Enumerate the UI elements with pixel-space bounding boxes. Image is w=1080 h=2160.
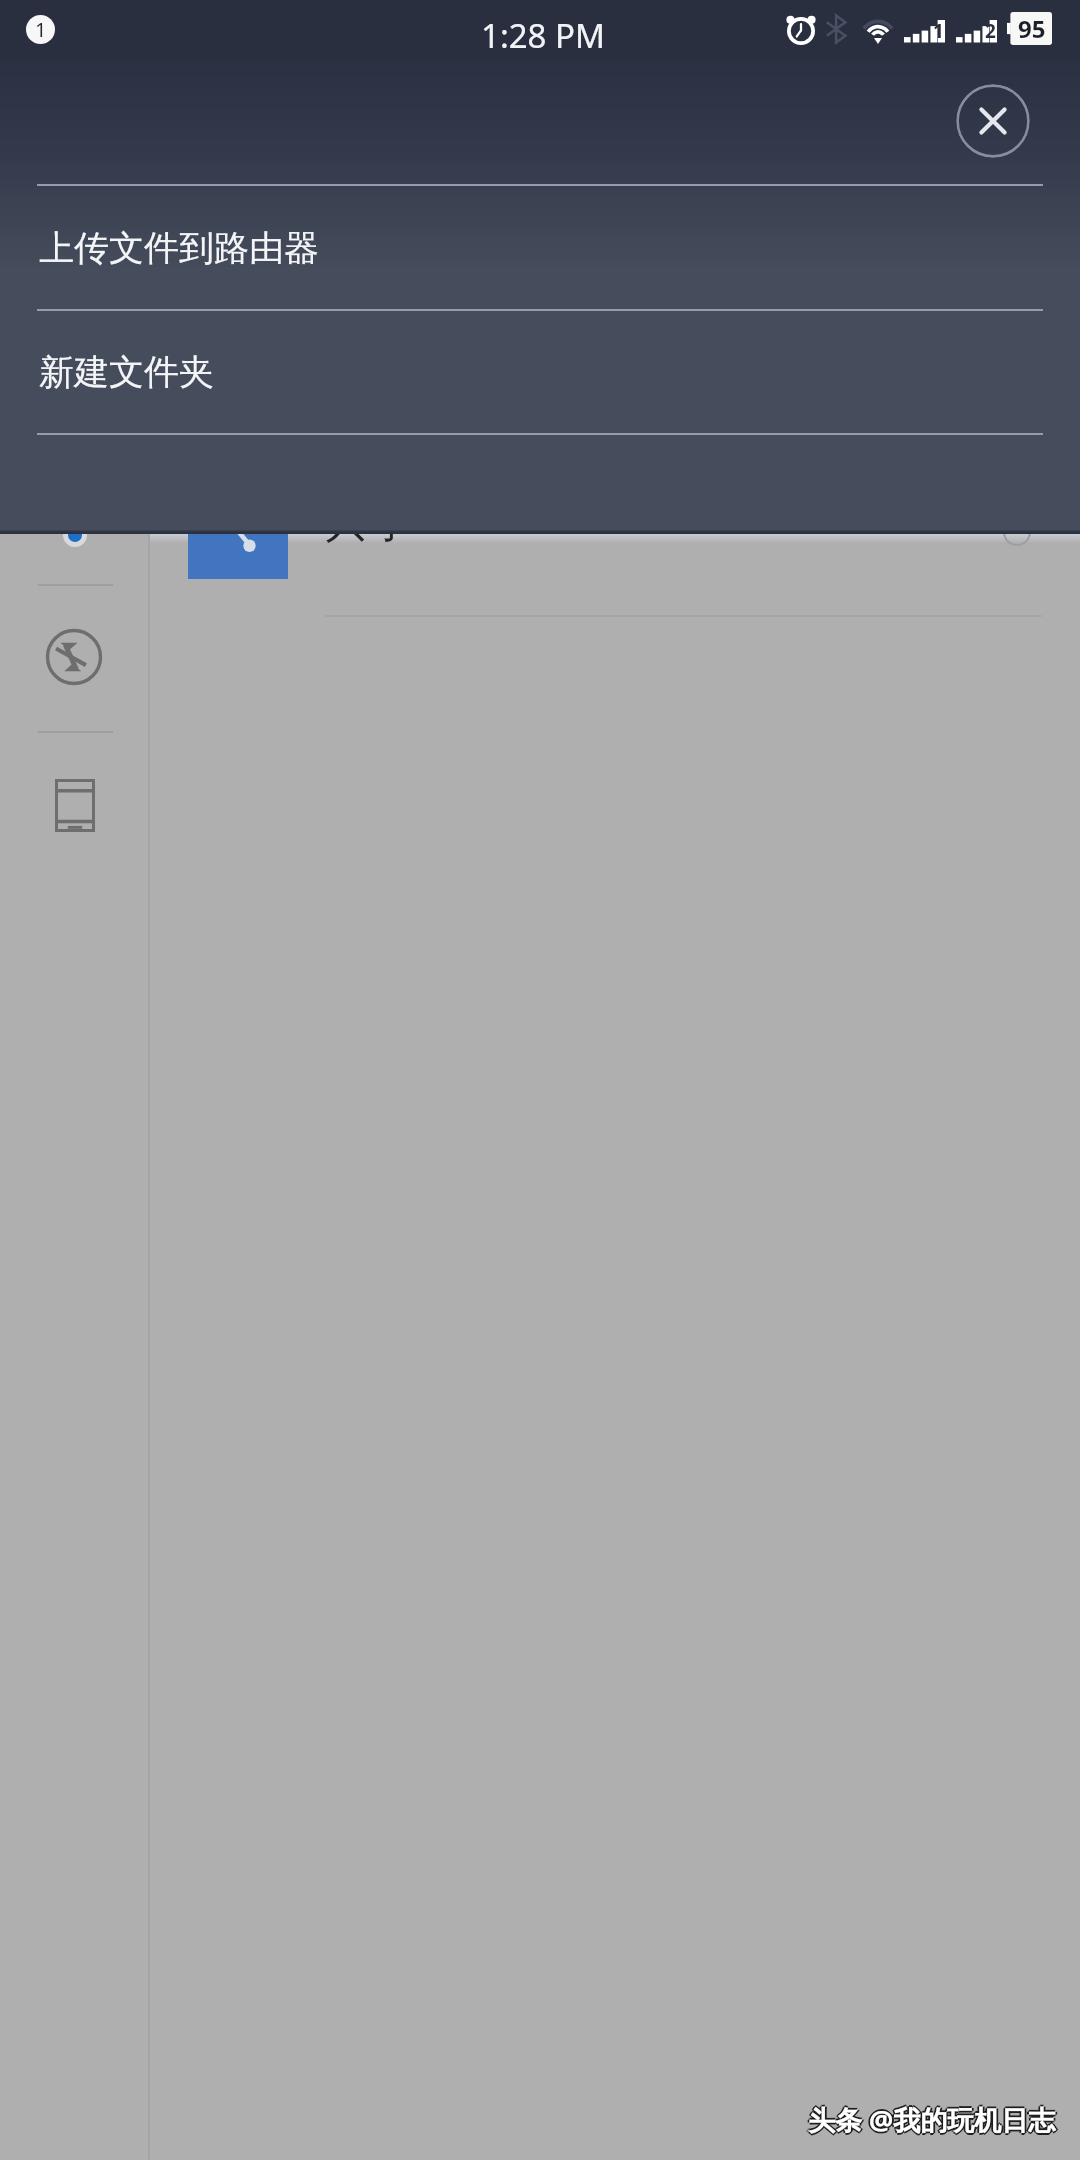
staticText: 头条 @我的玩机日志: [808, 2099, 1056, 2136]
staticText: 1:28 PM: [481, 13, 605, 58]
staticText: 95: [1018, 12, 1046, 45]
staticText: 头条 @我的玩机日志: [808, 2103, 1056, 2140]
button[interactable]: 新建文件夹: [0, 311, 1080, 433]
staticText: 头条 @我的玩机日志: [808, 2101, 1056, 2138]
button[interactable]: No transfer: [45, 628, 103, 686]
staticText: 共享: [325, 494, 413, 549]
staticText: 头条 @我的玩机日志: [807, 2100, 1055, 2137]
staticText: 2: [985, 18, 996, 44]
button[interactable]: Phone storage: [55, 779, 95, 832]
staticText: 新建文件夹: [39, 350, 214, 394]
button[interactable]: Close: [956, 84, 1030, 158]
staticText: 1: [933, 18, 944, 44]
staticText: 头条 @我的玩机日志: [806, 2101, 1054, 2138]
button[interactable]: 上传文件到路由器: [0, 186, 1080, 309]
staticText: 上传文件到路由器: [39, 226, 319, 270]
staticText: 头条 @我的玩机日志: [809, 2102, 1057, 2139]
staticText: 头条 @我的玩机日志: [810, 2101, 1058, 2138]
staticText: 1: [35, 16, 47, 43]
